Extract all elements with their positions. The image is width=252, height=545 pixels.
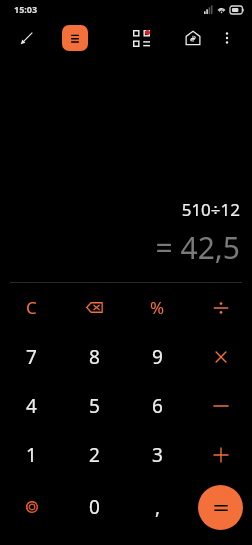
staticText: 8 — [89, 344, 100, 370]
button[interactable]: 7 — [0, 332, 63, 381]
staticText: 6 — [152, 393, 163, 419]
button[interactable]: 4 — [0, 381, 63, 430]
staticText: 7 — [26, 344, 37, 370]
button[interactable]: More options — [210, 21, 244, 55]
button[interactable]: Backspace — [63, 283, 126, 332]
staticText: 9 — [152, 344, 163, 370]
button[interactable]: Currency — [176, 21, 210, 55]
staticText: % — [150, 296, 165, 319]
button[interactable]: C — [0, 283, 63, 332]
staticText: 510÷12 — [181, 198, 240, 221]
button[interactable]: Equals — [198, 485, 243, 530]
staticText: 15:03 — [14, 3, 38, 15]
staticText: 3 — [152, 442, 163, 468]
button[interactable]: 3 — [126, 430, 189, 479]
staticText: , — [155, 494, 161, 520]
button[interactable]: 1 — [0, 430, 63, 479]
button[interactable]: 6 — [126, 381, 189, 430]
button[interactable]: Plus — [189, 430, 252, 479]
button[interactable]: , — [126, 479, 189, 535]
button[interactable]: Collapse — [8, 20, 44, 56]
button[interactable]: % — [126, 283, 189, 332]
staticText: 2 — [89, 442, 100, 468]
button[interactable]: Multiply — [189, 332, 252, 381]
staticText: 5 — [89, 393, 100, 419]
button[interactable]: 2 — [63, 430, 126, 479]
button[interactable]: 8 — [63, 332, 126, 381]
button[interactable]: Divide — [189, 283, 252, 332]
button[interactable]: Converter — [124, 21, 158, 55]
button[interactable]: Minus — [189, 381, 252, 430]
button[interactable]: 9 — [126, 332, 189, 381]
staticText: C — [26, 296, 37, 319]
staticText: 0 — [89, 494, 100, 520]
staticText: = 42,5 — [155, 227, 240, 268]
staticText: 4 — [26, 393, 37, 419]
button[interactable]: Scientific mode — [0, 479, 63, 535]
button[interactable]: 5 — [63, 381, 126, 430]
button[interactable]: 0 — [63, 479, 126, 535]
button[interactable]: Calculator — [62, 25, 88, 51]
staticText: 1 — [26, 442, 37, 468]
